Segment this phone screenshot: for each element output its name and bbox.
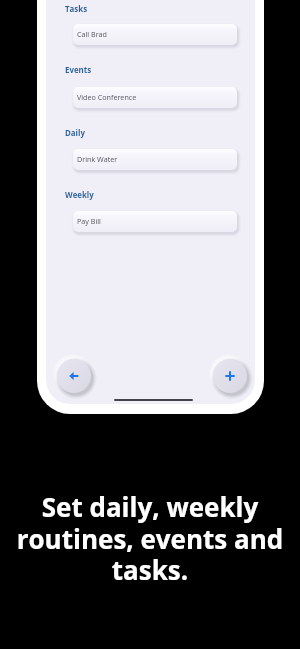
staticText: Set daily, weekly routines, events and t… [6,489,294,587]
button[interactable]: Video Conference [73,87,237,108]
staticText: Events [65,65,92,76]
button[interactable]: Pay Bill [73,211,237,232]
staticText: Video Conference [77,92,137,102]
staticText: Call Brad [77,29,107,39]
staticText: Drink Water [77,154,118,164]
staticText: Pay Bill [77,216,101,226]
button[interactable]: Back [57,359,91,393]
staticText: Daily [65,128,85,139]
staticText: Weekly [65,190,94,201]
button[interactable]: Call Brad [73,24,237,45]
button[interactable]: Drink Water [73,149,237,170]
staticText: Tasks [65,4,88,15]
button[interactable]: Add [213,359,247,393]
